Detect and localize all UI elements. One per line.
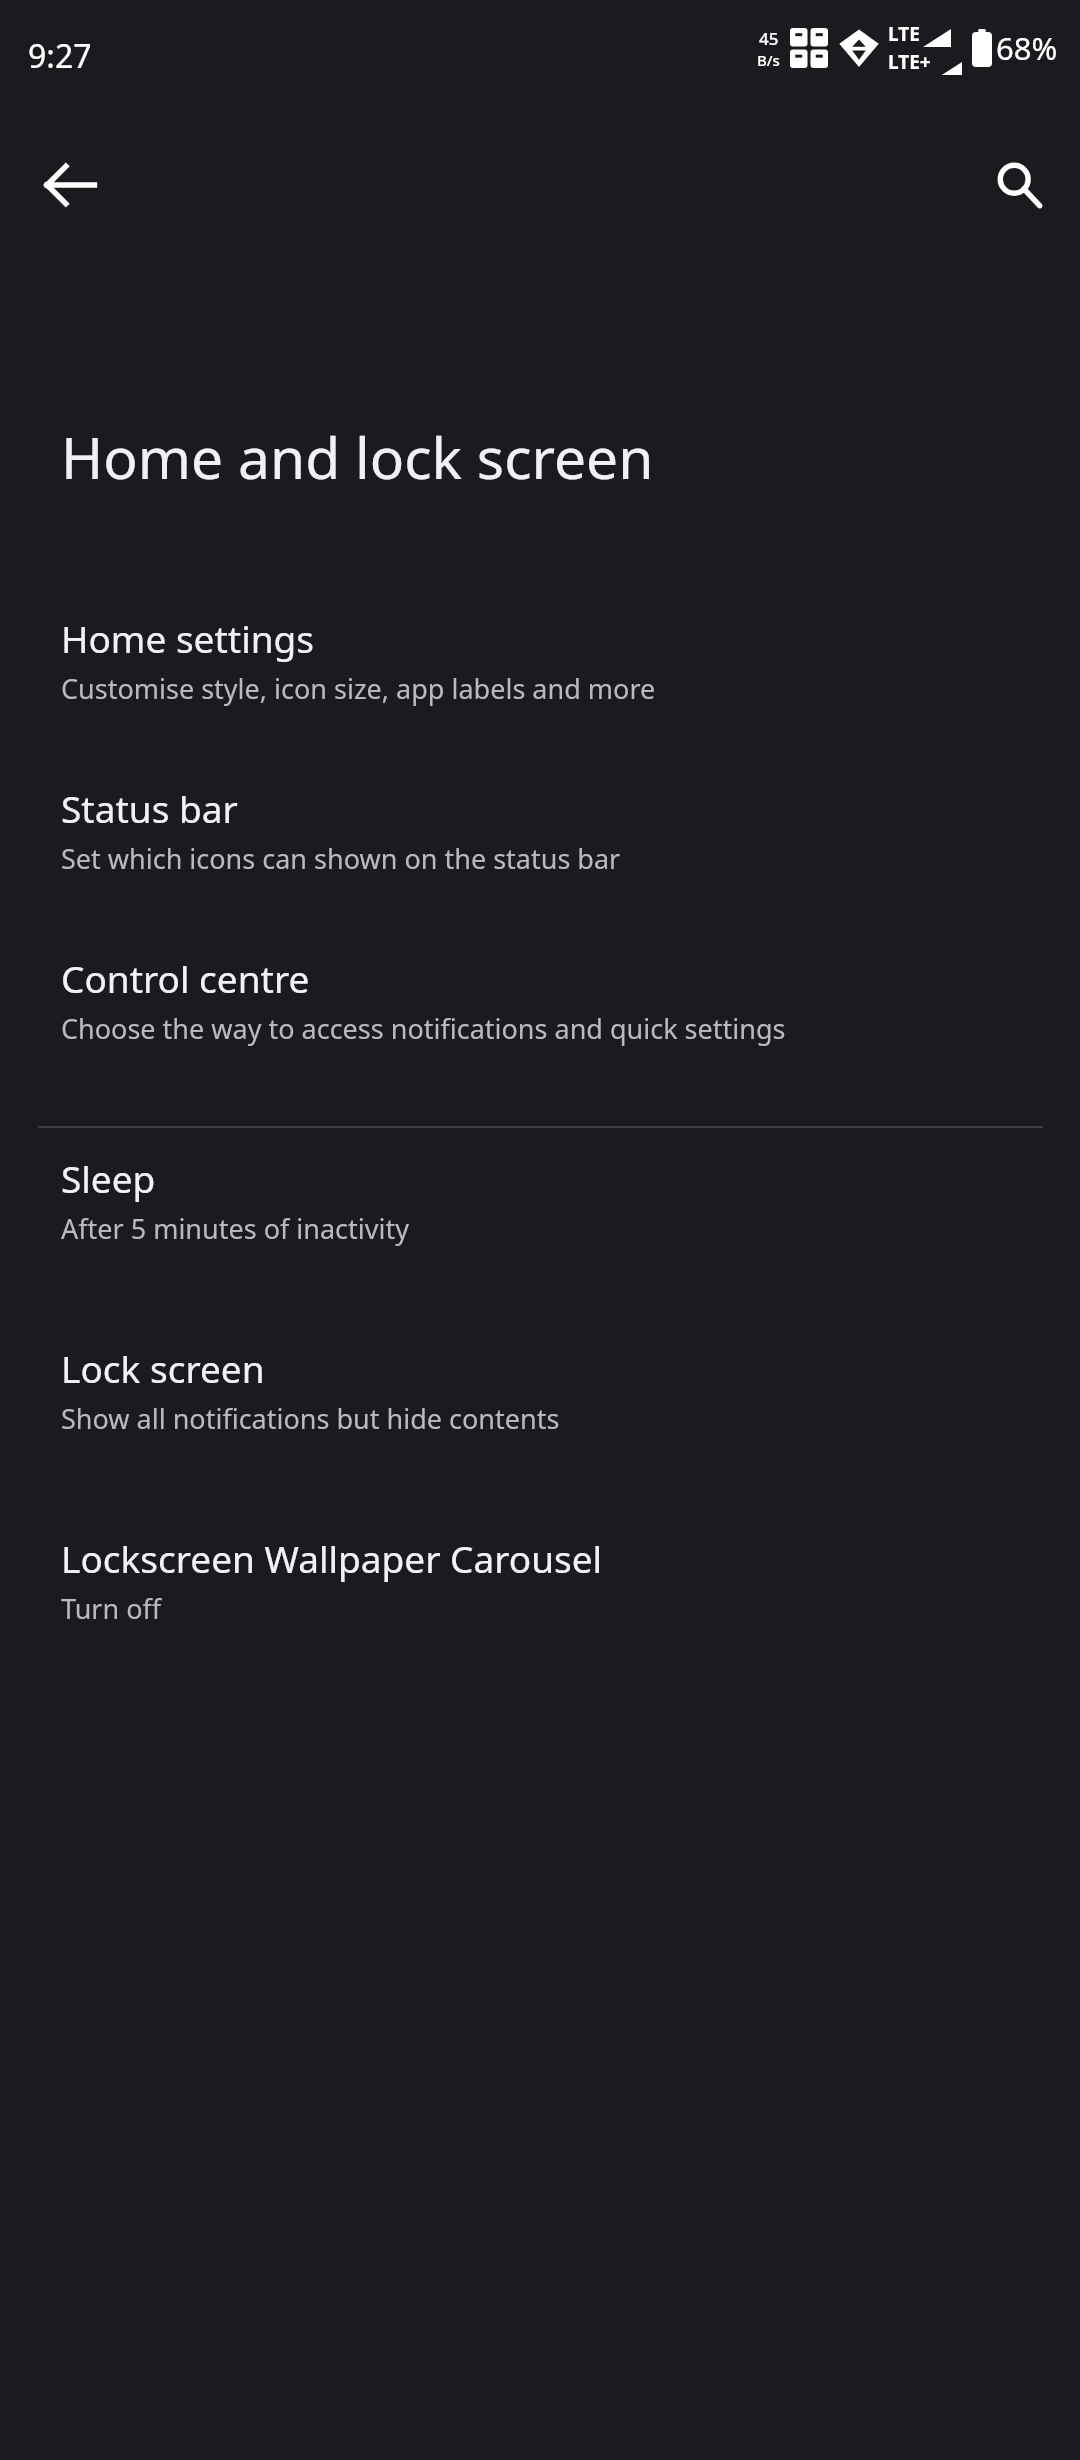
staticText: 68% [996,27,1058,69]
staticText: Sleep [61,1153,156,1203]
staticText: Status bar [61,783,238,833]
button[interactable]: Lock screen [0,1315,1080,1467]
button[interactable]: Search [965,131,1073,239]
button[interactable]: Sleep [0,1125,1080,1277]
staticText: B/s [757,50,780,70]
staticText: 9:27 [28,34,92,78]
staticText: After 5 minutes of inactivity [61,1210,409,1247]
staticText: Lock screen [61,1343,265,1393]
staticText: Show all notifications but hide contents [61,1400,560,1437]
staticText: Turn off [61,1590,162,1627]
staticText: Home and lock screen [61,418,654,496]
staticText: LTE+ [888,49,931,75]
button[interactable]: Lockscreen Wallpaper Carousel [0,1505,1080,1657]
staticText: Choose the way to access notifications a… [61,1010,786,1047]
button[interactable]: Status bar [0,755,1080,907]
staticText: Home settings [61,613,315,663]
button[interactable]: Back [16,131,124,239]
staticText: LTE [888,21,920,47]
staticText: Customise style, icon size, app labels a… [61,670,656,707]
button[interactable]: Home settings [0,585,1080,737]
staticText: Lockscreen Wallpaper Carousel [61,1533,603,1583]
button[interactable]: Control centre [0,925,1080,1077]
staticText: 45 [759,27,779,50]
staticText: Control centre [61,953,310,1003]
staticText: Set which icons can shown on the status … [61,840,621,877]
